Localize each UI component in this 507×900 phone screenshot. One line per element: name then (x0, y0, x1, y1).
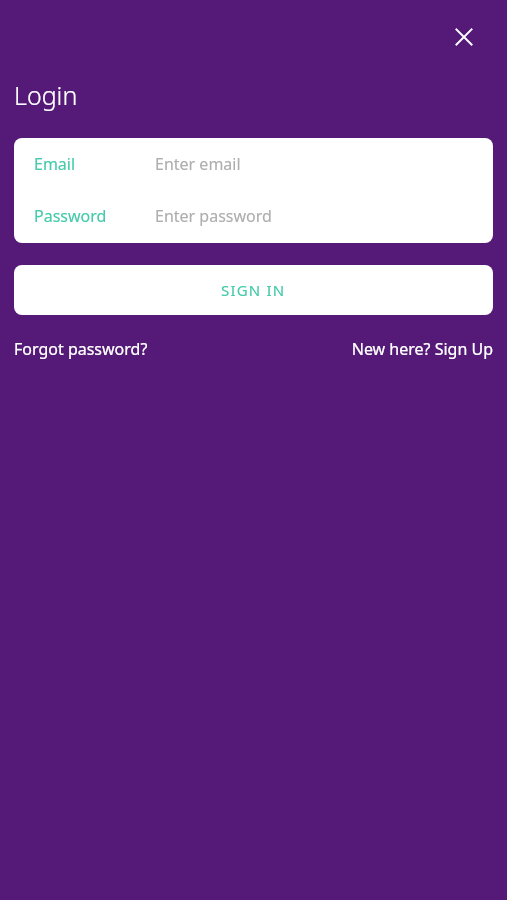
staticText: SIGN IN (221, 280, 286, 300)
staticText: Password (34, 205, 107, 227)
button[interactable]: Forgot password? (14, 334, 148, 364)
button[interactable]: SIGN IN (14, 265, 493, 315)
staticText: New here? Sign Up (351, 338, 493, 360)
staticText: Login (14, 78, 78, 112)
staticText: Enter password (155, 205, 272, 227)
button[interactable]: Password (14, 190, 493, 242)
staticText: Email (34, 153, 76, 175)
staticText: Enter email (155, 153, 241, 175)
button[interactable]: Close (446, 19, 482, 55)
button[interactable]: Email (14, 138, 493, 190)
staticText: Forgot password? (14, 338, 148, 360)
button[interactable]: New here? Sign Up (351, 334, 493, 364)
